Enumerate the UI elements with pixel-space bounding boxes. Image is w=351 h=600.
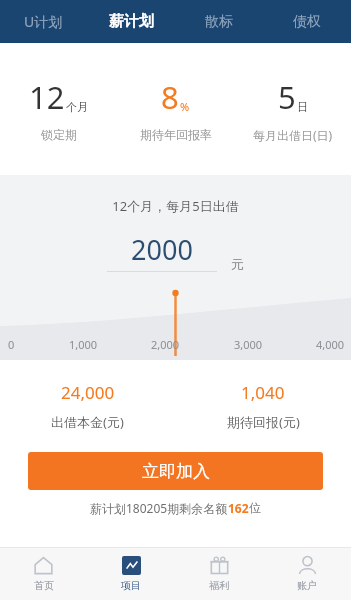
other: 账户 xyxy=(298,556,317,575)
staticText: 1,040 xyxy=(241,381,285,404)
staticText: 3,000 xyxy=(234,337,263,352)
staticText: 账户 xyxy=(297,579,317,592)
staticText: 2,000 xyxy=(151,337,180,352)
button[interactable]: 立即加入 xyxy=(28,452,323,490)
staticText: 福利 xyxy=(209,579,229,592)
staticText: 锁定期 xyxy=(41,127,77,142)
staticText: 薪计划 xyxy=(109,12,154,31)
other: 首页 xyxy=(34,556,53,575)
staticText: 1,000 xyxy=(69,337,98,352)
staticText: 2000 xyxy=(107,231,217,268)
button[interactable]: 首页 xyxy=(0,547,87,600)
staticText: 薪计划180205期剩余名额 xyxy=(90,500,228,516)
staticText: 散标 xyxy=(205,13,233,31)
staticText: 期待回报(元) xyxy=(227,413,300,431)
staticText: 24,000 xyxy=(61,381,115,404)
staticText: 日 xyxy=(297,100,308,114)
button[interactable]: 项目 xyxy=(87,547,175,600)
button[interactable]: U计划 xyxy=(0,0,87,43)
staticText: 12 xyxy=(29,76,65,118)
button[interactable]: 账户 xyxy=(263,547,351,600)
staticText: 4,000 xyxy=(316,337,345,352)
staticText: 5 xyxy=(278,76,296,118)
other: 项目 xyxy=(122,556,141,575)
staticText: 元 xyxy=(231,256,244,272)
staticText: 8 xyxy=(161,76,179,118)
staticText: 期待年回报率 xyxy=(140,127,212,142)
staticText: 出借本金(元) xyxy=(51,413,124,431)
button[interactable]: 薪计划 xyxy=(87,0,175,43)
staticText: 位 xyxy=(249,500,261,515)
other: 福利 xyxy=(210,556,229,575)
staticText: % xyxy=(180,99,190,114)
button[interactable]: 福利 xyxy=(175,547,263,600)
staticText: 个月 xyxy=(66,100,88,114)
staticText: 12个月，每月5日出借 xyxy=(0,197,351,215)
staticText: 债权 xyxy=(293,13,321,31)
staticText: 项目 xyxy=(121,579,141,592)
staticText: 0 xyxy=(8,337,15,352)
staticText: 每月出借日(日) xyxy=(253,127,333,143)
staticText: U计划 xyxy=(24,12,63,31)
staticText: 首页 xyxy=(34,579,54,592)
staticText: 立即加入 xyxy=(142,461,210,482)
staticText: 162 xyxy=(228,500,249,516)
button[interactable]: 债权 xyxy=(263,0,351,43)
button[interactable]: 散标 xyxy=(175,0,263,43)
